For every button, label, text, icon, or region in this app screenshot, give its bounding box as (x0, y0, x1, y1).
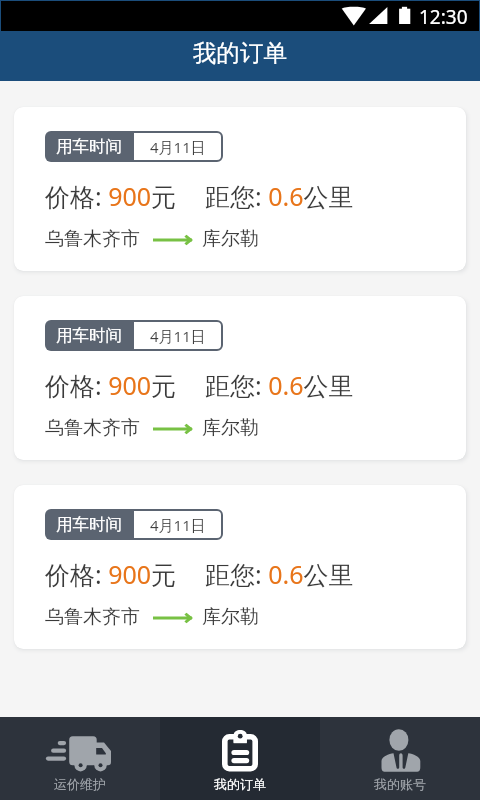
staticText: 我的账号 (374, 776, 426, 792)
staticText: 12:30 (419, 4, 468, 30)
staticText: 运价维护 (54, 776, 106, 792)
button[interactable]: 运价维护 (0, 717, 160, 800)
other: 我的订单 (220, 728, 260, 774)
staticText: 我的订单 (214, 776, 266, 792)
button[interactable]: 我的账号 (320, 717, 480, 800)
staticText: 用车时间 (56, 325, 122, 346)
button[interactable]: 我的订单 (160, 717, 320, 800)
staticText: 距您: 0.6公里 (205, 368, 354, 402)
staticText: 距您: 0.6公里 (205, 557, 354, 591)
staticText: 4月11日 (150, 326, 206, 346)
staticText: 用车时间 (56, 136, 122, 157)
button[interactable]: 用车时间 (14, 296, 466, 460)
staticText: 用车时间 (56, 514, 122, 535)
staticText: 库尔勒 (202, 416, 259, 440)
staticText: 4月11日 (150, 515, 206, 535)
button[interactable]: 用车时间 (14, 107, 466, 271)
button[interactable]: 用车时间 (14, 485, 466, 649)
staticText: 库尔勒 (202, 605, 259, 629)
staticText: 乌鲁木齐市 (45, 416, 140, 440)
staticText: 乌鲁木齐市 (45, 227, 140, 251)
staticText: 4月11日 (150, 137, 206, 157)
staticText: 乌鲁木齐市 (45, 605, 140, 629)
staticText: 价格: 900元 (45, 368, 177, 402)
other: 运价维护 (47, 736, 113, 776)
staticText: 我的订单 (193, 38, 287, 68)
staticText: 价格: 900元 (45, 557, 177, 591)
staticText: 库尔勒 (202, 227, 259, 251)
other: 我的账号 (379, 728, 421, 774)
staticText: 价格: 900元 (45, 179, 177, 213)
staticText: 距您: 0.6公里 (205, 179, 354, 213)
